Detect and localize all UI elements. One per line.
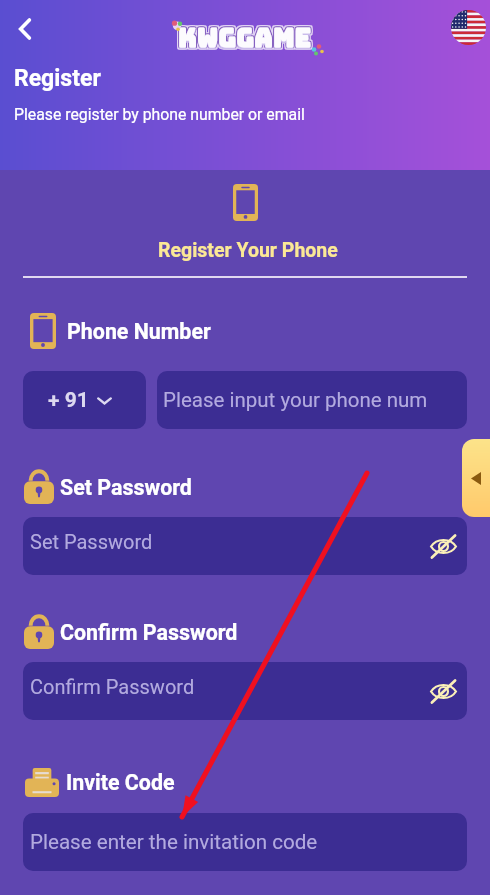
button[interactable]: Back [4,8,46,50]
staticText: Invite Code [66,770,175,795]
staticText: KWGGAME [180,23,314,57]
button[interactable]: Open panel [462,439,490,517]
staticText: KWGGAME [179,21,313,55]
staticText: KWGGAME [178,23,312,57]
staticText: KWGGAME [178,20,312,54]
button[interactable]: Please enter the invitation code [23,813,467,871]
staticText: Confirm Password [30,675,195,698]
staticText: KWGGAME [180,19,314,53]
button[interactable]: Language [451,10,486,45]
button[interactable]: Please input your phone num [157,371,467,429]
staticText: KWGGAME [180,21,314,55]
staticText: Confirm Password [60,620,238,645]
staticText: KWGGAME [177,20,311,54]
staticText: KWGGAME [179,20,313,54]
staticText: Register Your Phone [158,239,338,262]
staticText: KWGGAME [176,23,310,57]
staticText: KWGGAME [178,23,312,57]
staticText: KWGGAME [178,19,312,53]
staticText: KWGGAME [176,21,310,55]
staticText: KWGGAME [176,19,310,53]
staticText: KWGGAME [179,22,313,56]
staticText: Phone Number [67,319,211,344]
staticText: Please register by phone number or email [14,105,305,124]
staticText: KWGGAME [178,22,312,56]
button[interactable]: Show password [427,530,459,562]
button[interactable]: Set Password [23,517,467,575]
staticText: Set Password [60,475,192,500]
staticText: Please input your phone num [163,388,428,412]
staticText: Register [14,65,101,92]
button[interactable]: + 91 [23,371,146,429]
staticText: Set Password [30,530,153,553]
staticText: KWGGAME [177,21,311,55]
staticText: KWGGAME [177,22,311,56]
staticText: Please enter the invitation code [30,830,318,854]
staticText: KWGGAME [178,21,312,55]
button[interactable]: Confirm Password [23,662,467,720]
staticText: + 91 [48,388,89,413]
button[interactable]: Show password [427,675,459,707]
